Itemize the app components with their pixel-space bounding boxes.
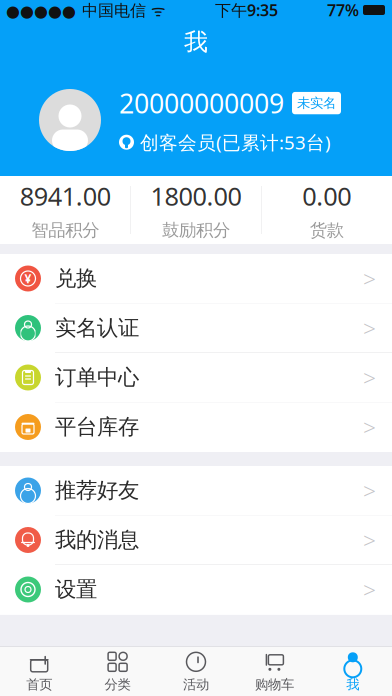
staticText: 1800.00	[150, 179, 241, 213]
staticText: 我	[184, 27, 208, 57]
button[interactable]: 分类	[78, 647, 157, 696]
staticText: 实名认证	[55, 315, 139, 341]
staticText: 0.00	[302, 179, 351, 213]
staticText: 智品积分	[31, 220, 99, 241]
staticText: 下午9:35	[215, 0, 278, 21]
staticText: 20000000009	[119, 85, 284, 121]
staticText: 货款	[310, 220, 344, 241]
staticText: 设置	[55, 576, 97, 603]
staticText: >	[363, 525, 376, 555]
button[interactable]: 购物车	[235, 647, 314, 696]
staticText: >	[363, 475, 376, 505]
staticText: >	[363, 574, 376, 604]
button[interactable]: 首页	[0, 647, 78, 696]
staticText: 平台库存	[55, 414, 139, 440]
staticText: 未实名	[297, 95, 336, 111]
staticText: 活动	[183, 676, 209, 693]
staticText: 8941.00	[20, 179, 111, 213]
staticText: >	[363, 412, 376, 442]
button[interactable]: 设置	[0, 565, 392, 614]
staticText: ●●●●● 中国电信 ᯤ	[6, 0, 166, 21]
staticText: >	[363, 263, 376, 293]
staticText: 购物车	[255, 676, 294, 693]
staticText: 兑换	[55, 265, 97, 292]
button[interactable]: 活动	[157, 647, 235, 696]
staticText: ¥	[24, 270, 31, 286]
button[interactable]: 我	[314, 647, 392, 696]
staticText: >	[363, 362, 376, 392]
button[interactable]: 推荐好友	[0, 466, 392, 515]
staticText: >	[363, 313, 376, 343]
staticText: 分类	[105, 676, 131, 693]
staticText: 我的消息	[55, 527, 139, 553]
staticText: 推荐好友	[55, 477, 139, 504]
button[interactable]: 订单中心	[0, 353, 392, 402]
staticText: 订单中心	[55, 364, 139, 391]
staticText: 首页	[26, 676, 52, 693]
button[interactable]: ¥	[0, 254, 392, 303]
button[interactable]: 平台库存	[0, 402, 392, 452]
button[interactable]: 实名认证	[0, 303, 392, 353]
staticText: 创客会员(已累计:53台)	[140, 130, 331, 155]
staticText: 我	[346, 676, 359, 693]
button[interactable]: 我的消息	[0, 515, 392, 565]
staticText: 鼓励积分	[162, 220, 230, 241]
staticText: 77%	[327, 0, 359, 21]
